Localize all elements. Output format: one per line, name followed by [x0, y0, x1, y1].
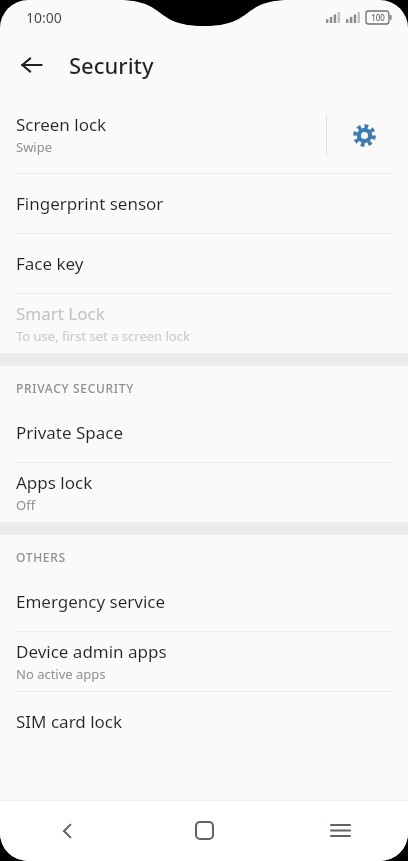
staticText: To use, first set a screen lock [16, 327, 190, 345]
staticText: Fingerprint sensor [16, 192, 164, 215]
button[interactable]: Back [0, 800, 136, 861]
button[interactable]: Apps lock [0, 463, 408, 522]
button[interactable]: Face key [0, 234, 408, 293]
staticText: Screen lock [16, 113, 107, 136]
button[interactable]: Fingerprint sensor [0, 174, 408, 233]
button[interactable]: Screen lock [0, 96, 408, 173]
staticText: PRIVACY SECURITY [16, 380, 134, 396]
staticText: OTHERS [16, 549, 66, 565]
staticText: 100 [371, 12, 385, 23]
button[interactable]: Device admin apps [0, 632, 408, 691]
staticText: Emergency service [16, 590, 166, 613]
button[interactable]: Private Space [0, 403, 408, 462]
staticText: Swipe [16, 138, 53, 156]
staticText: SIM card lock [16, 710, 123, 733]
staticText: Device admin apps [16, 640, 167, 663]
staticText: Off [16, 496, 36, 514]
button[interactable]: Emergency service [0, 572, 408, 631]
button[interactable]: Screen lock settings [342, 113, 386, 157]
staticText: Apps lock [16, 471, 93, 494]
button[interactable]: Recent apps [272, 800, 408, 861]
button[interactable]: Back [12, 45, 52, 85]
staticText: No active apps [16, 665, 106, 683]
staticText: 10:00 [26, 8, 62, 27]
staticText: Smart Lock [16, 302, 105, 325]
button[interactable]: Home [136, 800, 272, 861]
staticText: Private Space [16, 421, 124, 444]
staticText: Face key [16, 252, 84, 275]
button[interactable]: SIM card lock [0, 692, 408, 751]
staticText: Security [69, 50, 154, 80]
button[interactable]: Smart Lock [0, 294, 408, 353]
